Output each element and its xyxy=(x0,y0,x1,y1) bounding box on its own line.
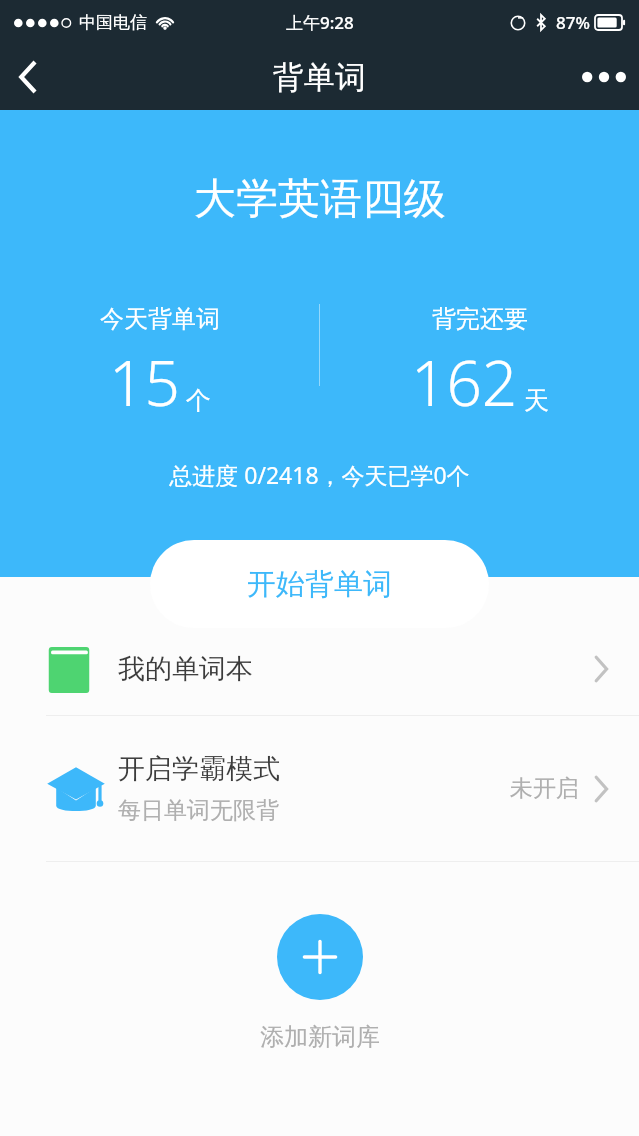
staticText: 162 xyxy=(411,340,518,424)
staticText: 15 xyxy=(109,340,180,424)
staticText: 未开启 xyxy=(510,774,579,803)
button[interactable]: 开始背单词 xyxy=(150,540,489,628)
staticText: 今天背单词 xyxy=(100,304,220,334)
staticText: 上午9:28 xyxy=(286,11,354,34)
staticText: 开启学霸模式 xyxy=(118,752,280,786)
staticText: 总进度 0/2418，今天已学0个 xyxy=(169,459,470,490)
staticText: 背完还要 xyxy=(432,304,528,334)
staticText: 87% xyxy=(556,11,590,34)
button[interactable]: 我的单词本 xyxy=(0,622,639,715)
staticText: 背单词 xyxy=(273,58,366,97)
staticText: 中国电信 xyxy=(79,12,147,33)
button[interactable]: Back xyxy=(0,49,56,105)
staticText: 添加新词库 xyxy=(260,1022,380,1052)
staticText: 大学英语四级 xyxy=(194,173,446,226)
staticText: 我的单词本 xyxy=(118,652,253,686)
staticText: 开始背单词 xyxy=(247,566,392,603)
staticText: 天 xyxy=(524,385,549,416)
button[interactable]: 开启学霸模式 xyxy=(0,716,639,861)
button[interactable]: Add new word list xyxy=(277,914,363,1000)
staticText: 每日单词无限背 xyxy=(118,796,279,825)
button[interactable]: More options xyxy=(569,44,639,110)
staticText: 个 xyxy=(186,385,211,416)
